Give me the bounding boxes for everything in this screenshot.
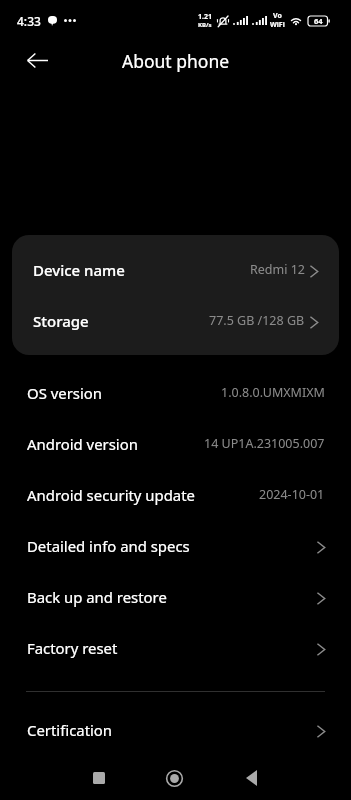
- button[interactable]: Factory reset: [0, 622, 351, 673]
- staticText: Redmi 12: [250, 261, 305, 278]
- staticText: 1.21: [198, 12, 212, 22]
- staticText: Storage: [33, 311, 89, 331]
- button[interactable]: Device name: [12, 244, 339, 295]
- button[interactable]: Android version: [0, 418, 351, 469]
- button[interactable]: Home: [146, 755, 202, 800]
- button[interactable]: Storage: [12, 295, 339, 346]
- staticText: 1.0.8.0.UMXMIXM: [221, 384, 325, 401]
- staticText: Certification: [27, 720, 113, 740]
- button[interactable]: Detailed info and specs: [0, 520, 351, 571]
- button[interactable]: Back up and restore: [0, 571, 351, 622]
- button[interactable]: Back: [26, 49, 48, 71]
- button[interactable]: OS version: [0, 367, 351, 418]
- staticText: OS version: [27, 383, 102, 403]
- button[interactable]: Android security update: [0, 469, 351, 520]
- staticText: 77.5 GB /128 GB: [209, 312, 305, 329]
- staticText: KB/s: [198, 21, 212, 29]
- staticText: 14 UP1A.231005.007: [204, 435, 325, 452]
- staticText: WiFi: [270, 20, 285, 30]
- button[interactable]: Certification: [0, 704, 351, 755]
- staticText: Back up and restore: [27, 587, 167, 607]
- staticText: Android security update: [27, 485, 195, 505]
- staticText: Detailed info and specs: [27, 536, 190, 556]
- staticText: Factory reset: [27, 638, 118, 658]
- staticText: Device name: [33, 260, 125, 280]
- button[interactable]: Back: [223, 755, 279, 800]
- button[interactable]: Recents: [71, 755, 127, 800]
- staticText: Vo: [273, 11, 282, 21]
- staticText: 4:33: [17, 13, 41, 29]
- staticText: About phone: [122, 49, 230, 73]
- staticText: Android version: [27, 434, 138, 454]
- staticText: 2024-10-01: [259, 486, 325, 503]
- staticText: 64: [314, 16, 323, 26]
